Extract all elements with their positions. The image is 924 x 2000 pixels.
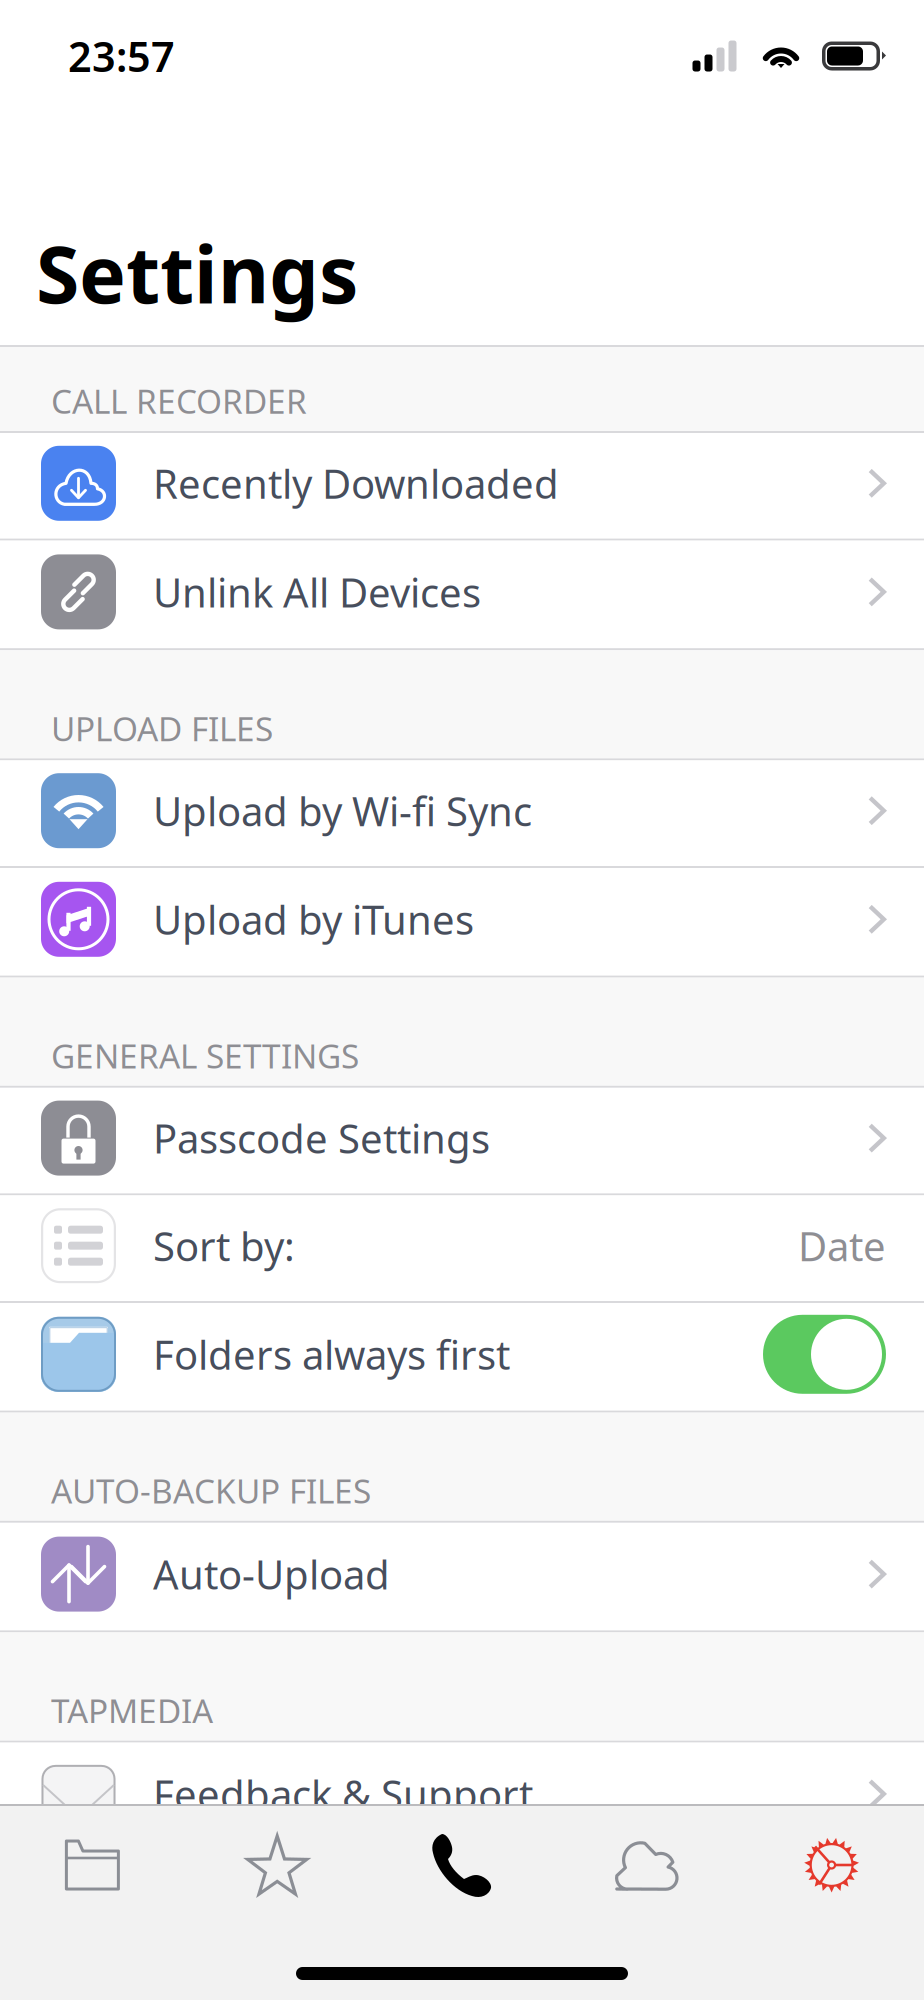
button[interactable]: Folders always first [0, 1303, 924, 1411]
staticText: Upload by Wi-fi Sync [153, 784, 532, 837]
staticText: Settings [36, 220, 358, 325]
staticText: Passcode Settings [153, 1111, 490, 1165]
button[interactable]: Upload by iTunes [0, 868, 924, 976]
button[interactable]: Settings [739, 1806, 924, 1924]
staticText: Date [798, 1219, 886, 1272]
staticText: Feedback & Support [153, 1767, 533, 1820]
staticText: Upload by iTunes [153, 893, 474, 946]
staticText: Unlink All Devices [153, 565, 481, 618]
button[interactable]: Favorites [185, 1806, 370, 1924]
button[interactable]: Feedback & Support [0, 1743, 924, 1850]
button[interactable]: Passcode Settings [0, 1088, 924, 1195]
staticText: UPLOAD FILES [51, 706, 273, 750]
staticText: Recently Downloaded [153, 457, 559, 510]
staticText: AUTO-BACKUP FILES [51, 1468, 371, 1513]
button[interactable]: Cloud [554, 1806, 739, 1924]
staticText: Auto-Upload [153, 1547, 390, 1601]
button[interactable]: Unlink All Devices [0, 541, 924, 648]
staticText: Sort by: [153, 1219, 295, 1272]
button[interactable]: Call Recorder [370, 1806, 554, 1924]
button[interactable]: Sort by: [0, 1195, 924, 1303]
button[interactable]: Files [0, 1806, 185, 1924]
button[interactable]: Upload by Wi-fi Sync [0, 760, 924, 868]
button[interactable]: Auto-Upload [0, 1523, 924, 1630]
staticText: Folders always first [153, 1328, 510, 1381]
staticText: CALL RECORDER [51, 379, 307, 423]
button[interactable]: Recently Downloaded [0, 433, 924, 541]
staticText: 23:57 [68, 29, 175, 83]
staticText: TAPMEDIA [51, 1688, 213, 1733]
staticText: GENERAL SETTINGS [51, 1033, 359, 1078]
